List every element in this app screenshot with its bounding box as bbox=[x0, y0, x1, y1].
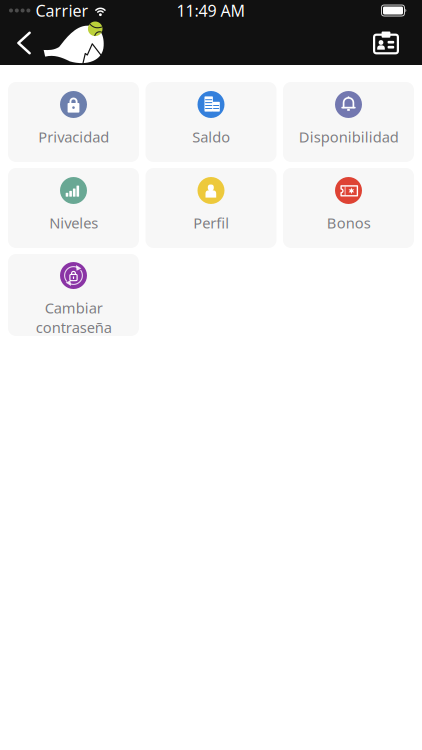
staticText: Saldo bbox=[192, 127, 230, 146]
button[interactable]: Privacidad bbox=[8, 82, 139, 162]
staticText: Perfil bbox=[193, 213, 229, 232]
staticText: Carrier bbox=[35, 0, 88, 21]
button[interactable]: Saldo bbox=[145, 82, 276, 162]
button[interactable]: Perfil bbox=[145, 168, 276, 248]
button[interactable]: Disponibilidad bbox=[283, 82, 414, 162]
staticText: Privacidad bbox=[38, 127, 109, 146]
staticText: Niveles bbox=[49, 213, 98, 232]
button[interactable]: Carnet bbox=[364, 21, 408, 65]
staticText: 11:49 AM bbox=[176, 0, 245, 21]
staticText: Cambiar contraseña bbox=[35, 298, 111, 337]
button[interactable]: Cambiar contraseña bbox=[8, 254, 139, 336]
staticText: Disponibilidad bbox=[298, 127, 398, 146]
button[interactable]: Niveles bbox=[8, 168, 139, 248]
staticText: Bonos bbox=[326, 213, 370, 232]
button[interactable]: Bonos bbox=[283, 168, 414, 248]
button[interactable]: Back bbox=[11, 21, 37, 65]
